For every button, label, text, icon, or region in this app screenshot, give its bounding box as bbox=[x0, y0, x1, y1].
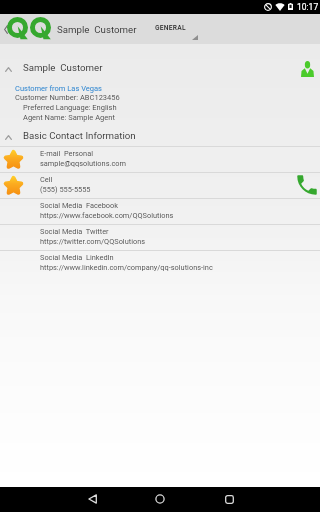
staticText: Cell bbox=[40, 175, 53, 184]
staticText: Agent Name: Sample Agent bbox=[23, 113, 115, 122]
staticText: https://www.linkedin.com/company/qq-solu… bbox=[40, 263, 213, 272]
staticText: Customer from Las Vegas bbox=[15, 84, 102, 93]
button[interactable]: E-mail Personal bbox=[0, 146, 320, 172]
button[interactable]: Social Media Twitter bbox=[0, 224, 320, 250]
staticText: Social Media Twitter bbox=[40, 227, 109, 236]
button[interactable]: Home bbox=[148, 487, 172, 511]
button[interactable]: Basic Contact Information bbox=[0, 125, 320, 146]
staticText: (555) 555-5555 bbox=[40, 185, 91, 194]
staticText: Sample Customer bbox=[23, 62, 103, 73]
staticText: sample@qqsolutions.com bbox=[40, 159, 126, 168]
button[interactable]: Recent apps bbox=[217, 487, 241, 511]
button[interactable]: Sample Customer bbox=[0, 56, 320, 79]
button[interactable]: Cell bbox=[0, 172, 320, 198]
staticText: E-mail Personal bbox=[40, 149, 93, 158]
button[interactable]: Social Media Facebook bbox=[0, 198, 320, 224]
staticText: Customer Number: ABC123456 bbox=[15, 93, 120, 102]
staticText: 10:17 bbox=[297, 2, 319, 12]
button[interactable]: Customer profile bbox=[297, 56, 318, 77]
staticText: Social Media LinkedIn bbox=[40, 253, 114, 262]
staticText: Preferred Language: English bbox=[23, 103, 117, 112]
staticText: https://www.facebook.com/QQSolutions bbox=[40, 211, 174, 220]
button[interactable]: Back bbox=[80, 487, 104, 511]
button[interactable]: Navigate up bbox=[0, 14, 11, 44]
button[interactable]: GENERAL bbox=[150, 14, 202, 44]
button[interactable]: Call bbox=[294, 172, 320, 198]
button[interactable]: Social Media LinkedIn bbox=[0, 250, 320, 276]
staticText: Sample Customer bbox=[57, 24, 137, 35]
staticText: Social Media Facebook bbox=[40, 201, 119, 210]
staticText: https://twitter.com/QQSolutions bbox=[40, 237, 146, 246]
staticText: GENERAL bbox=[155, 24, 186, 32]
staticText: Basic Contact Information bbox=[23, 130, 136, 141]
